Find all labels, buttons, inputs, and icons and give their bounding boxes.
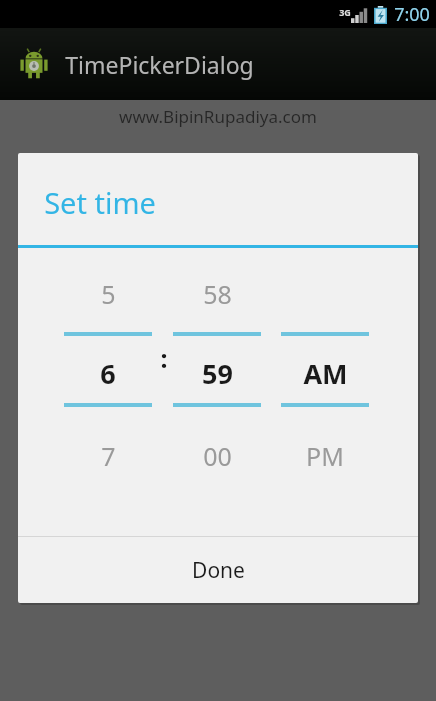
staticText: www.BipinRupadiya.com	[119, 105, 317, 128]
staticText: 3G	[339, 6, 351, 18]
button[interactable]: 58	[173, 248, 261, 536]
staticText: 5	[101, 277, 116, 311]
staticText: Done	[192, 556, 245, 585]
staticText: 6	[100, 355, 116, 392]
staticText: TimePickerDialog	[65, 49, 254, 80]
staticText: 00	[203, 439, 232, 473]
staticText: 7:00	[394, 2, 430, 27]
staticText: :	[160, 341, 168, 375]
staticText: AM	[303, 355, 348, 392]
staticText: PM	[306, 439, 344, 473]
staticText: 59	[202, 355, 233, 392]
button[interactable]: AM	[281, 248, 369, 536]
staticText: 58	[203, 277, 232, 311]
staticText: Set time	[44, 183, 156, 222]
button[interactable]: Done	[18, 537, 418, 603]
button[interactable]: 5	[64, 248, 152, 536]
staticText: 7	[101, 439, 116, 473]
